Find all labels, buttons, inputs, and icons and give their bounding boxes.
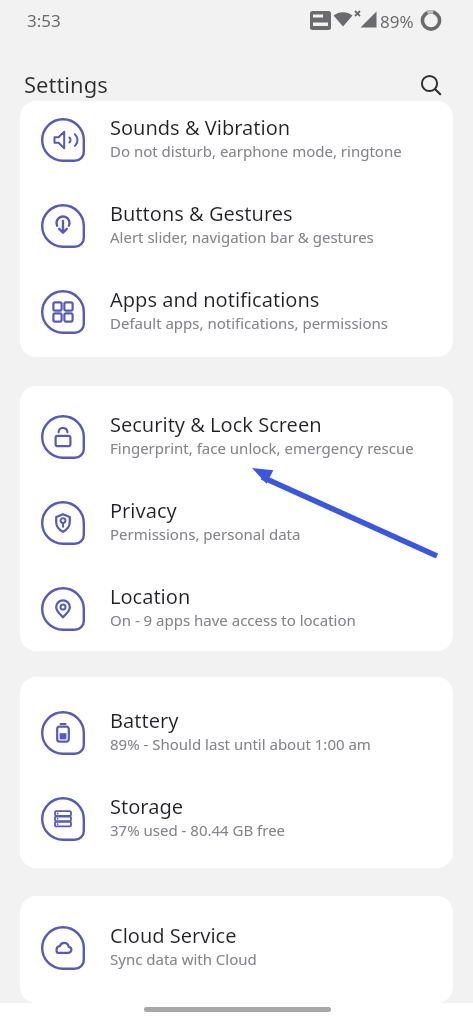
button[interactable]: Privacy [20,480,453,566]
staticText: Alert slider, navigation bar & gestures [110,227,374,247]
staticText: Settings [24,69,108,99]
button[interactable]: Security & Lock Screen [20,394,453,480]
staticText: Apps and notifications [110,286,320,312]
staticText: Default apps, notifications, permissions [110,313,388,333]
staticText: Privacy [110,497,177,523]
staticText: Sounds & Vibration [110,114,291,140]
button[interactable]: Battery [20,690,453,776]
staticText: Cloud Service [110,922,237,948]
button[interactable] [419,73,445,99]
staticText: 89% - Should last until about 1:00 am [110,734,371,754]
staticText: Permissions, personal data [110,524,301,544]
staticText: Location [110,583,191,609]
staticText: Do not disturb, earphone mode, ringtone [110,141,402,161]
staticText: Battery [110,707,179,733]
button[interactable]: Buttons & Gestures [20,183,453,269]
button[interactable]: Location [20,566,453,652]
staticText: Storage [110,793,183,819]
staticText: Security & Lock Screen [110,411,322,437]
staticText: 89% [380,10,414,33]
button[interactable]: Sounds & Vibration [20,97,453,183]
button[interactable]: Apps and notifications [20,269,453,355]
button[interactable]: Storage [20,776,453,862]
staticText: 37% used - 80.44 GB free [110,820,286,840]
staticText: On - 9 apps have access to location [110,610,356,630]
button[interactable]: Cloud Service [20,905,453,991]
staticText: Buttons & Gestures [110,200,293,226]
staticText: Fingerprint, face unlock, emergency resc… [110,438,414,458]
staticText: 3:53 [27,9,61,32]
staticText: Sync data with Cloud [110,949,257,969]
